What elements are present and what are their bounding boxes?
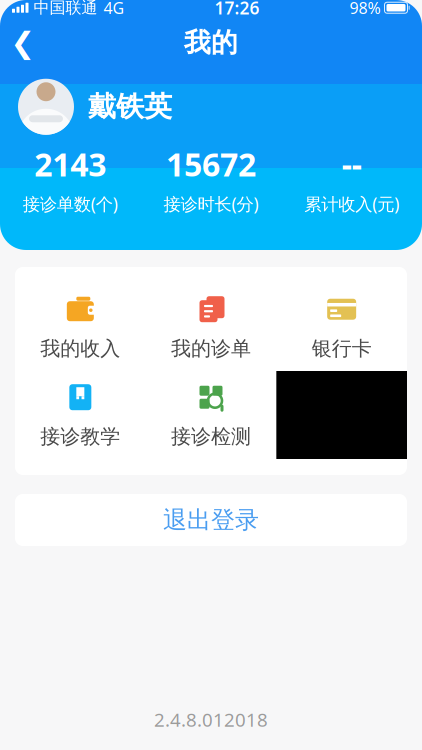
button[interactable]: 接诊教学 [15,371,146,459]
staticText: 2.4.8.012018 [154,707,268,732]
button[interactable]: 我的诊单 [146,283,276,371]
button[interactable]: 接诊检测 [146,371,276,459]
staticText: 中国联通 [33,0,97,18]
staticText: 15672 [166,143,256,185]
staticText: ❮ [10,26,35,59]
staticText: 2143 [34,143,106,185]
staticText: 退出登录 [163,505,259,535]
staticText: 我的收入 [40,336,120,361]
staticText: 接诊时长(分) [163,192,258,215]
button[interactable]: Back [0,21,46,65]
staticText: 累计收入(元) [304,192,399,215]
staticText: 接诊检测 [171,424,251,449]
staticText: 接诊单数(个) [23,192,118,215]
staticText: -- [342,143,362,185]
staticText: 17:26 [214,0,259,19]
button[interactable]: 银行卡 [276,283,407,371]
staticText: 接诊教学 [40,424,120,449]
button[interactable]: 我的收入 [15,283,146,371]
button[interactable]: 退出登录 [15,494,407,546]
staticText: 我的诊单 [171,336,251,361]
staticText: 戴铁英 [88,89,172,124]
staticText: 98% [349,0,380,18]
staticText: 4G [103,0,124,18]
staticText: 我的 [184,26,238,59]
staticText: 银行卡 [312,336,372,361]
